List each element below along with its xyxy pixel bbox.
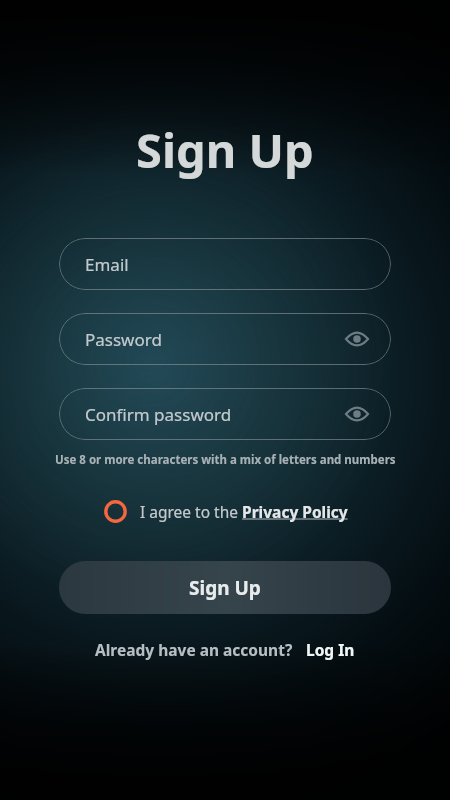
button[interactable]: Agree to Privacy Policy	[96, 494, 354, 528]
button[interactable]: Log In	[302, 635, 359, 664]
staticText: Sign Up	[136, 118, 314, 182]
staticText: Confirm password	[85, 403, 232, 426]
button[interactable]: Show password	[342, 399, 372, 429]
button[interactable]: Password	[59, 313, 391, 365]
button[interactable]: Email	[59, 238, 391, 290]
other: Agree to Privacy Policy	[102, 498, 128, 524]
staticText: Use 8 or more characters with a mix of l…	[55, 452, 396, 468]
button[interactable]: Confirm password	[59, 388, 391, 440]
staticText: I agree to the Privacy Policy	[140, 501, 348, 522]
button[interactable]: Already have an account?	[91, 635, 297, 664]
staticText: Sign Up	[189, 575, 261, 601]
staticText: Password	[85, 328, 162, 351]
button[interactable]: Sign Up	[59, 561, 391, 614]
staticText: Email	[85, 253, 129, 276]
button[interactable]: Show password	[342, 324, 372, 354]
